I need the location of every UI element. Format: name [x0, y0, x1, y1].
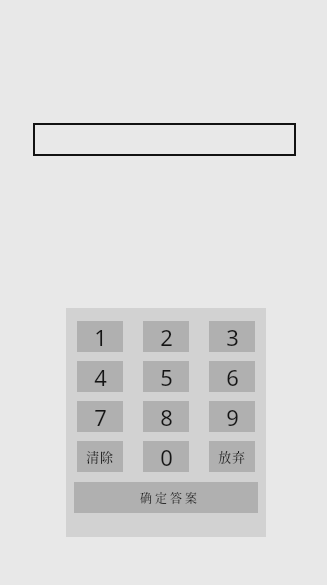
button[interactable]: 8	[143, 401, 189, 432]
staticText: 3	[226, 322, 239, 352]
staticText: 7	[94, 402, 107, 432]
button[interactable]: 0	[143, 441, 189, 472]
button[interactable]: 6	[209, 361, 255, 392]
staticText: 4	[94, 362, 107, 392]
button[interactable]: 3	[209, 321, 255, 352]
staticText: 0	[160, 442, 173, 472]
staticText: 2	[160, 322, 173, 352]
staticText: 清除	[86, 447, 114, 466]
button[interactable]: 5	[143, 361, 189, 392]
button[interactable]: 9	[209, 401, 255, 432]
staticText: 9	[226, 402, 239, 432]
button[interactable]: 4	[77, 361, 123, 392]
staticText: 8	[160, 402, 173, 432]
staticText: 确定答案	[140, 489, 201, 506]
button[interactable]: 确定答案	[74, 482, 258, 513]
button[interactable]: 1	[77, 321, 123, 352]
button[interactable]: 2	[143, 321, 189, 352]
button[interactable]: 放弃	[209, 441, 255, 472]
staticText: 6	[226, 362, 239, 392]
button[interactable]: 7	[77, 401, 123, 432]
staticText: 5	[160, 362, 173, 392]
staticText: 1	[94, 322, 107, 352]
button[interactable]: Answer input field	[33, 123, 296, 156]
staticText: 放弃	[218, 447, 246, 466]
button[interactable]: 清除	[77, 441, 123, 472]
